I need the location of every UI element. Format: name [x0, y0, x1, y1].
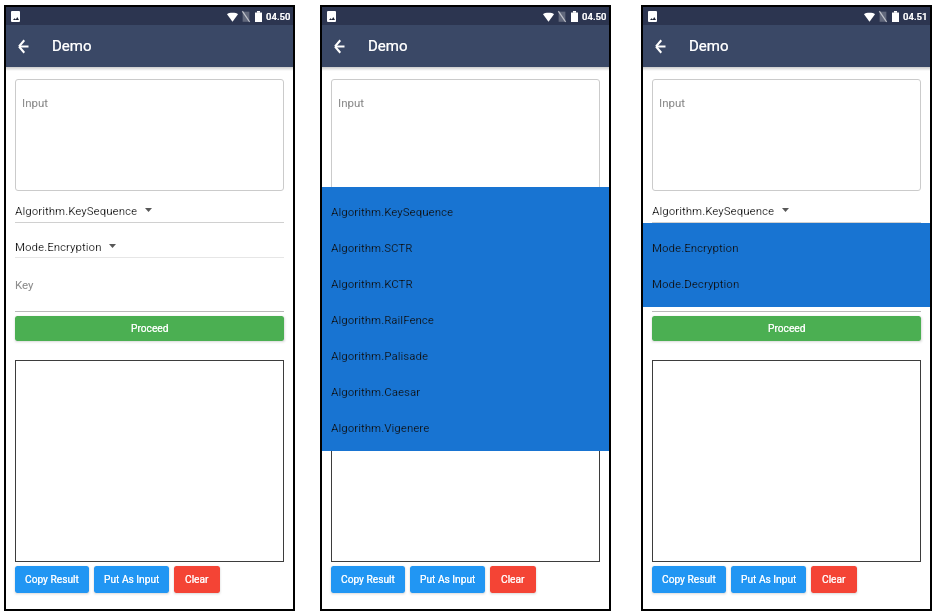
staticText: Mode.Decryption — [652, 277, 740, 290]
button[interactable]: Proceed — [15, 316, 284, 341]
button[interactable]: Copy Result — [15, 566, 89, 593]
staticText: 04.50 — [582, 11, 607, 22]
staticText: Copy Result — [25, 574, 79, 586]
button[interactable]: Algorithm.KeySequence — [652, 199, 937, 221]
staticText: Mode.Encryption — [652, 241, 739, 254]
button[interactable]: Back — [326, 33, 352, 59]
staticText: Proceed — [131, 323, 169, 335]
button[interactable]: Back — [10, 33, 36, 59]
button[interactable]: Clear — [490, 566, 536, 593]
staticText: Algorithm.RailFence — [331, 313, 434, 326]
button[interactable]: Algorithm.KeySequence — [15, 199, 302, 221]
staticText: Algorithm.KCTR — [331, 277, 413, 290]
staticText: Algorithm.KeySequence — [652, 204, 775, 217]
staticText: Key — [331, 278, 350, 291]
staticText: Key — [15, 278, 34, 291]
staticText: Clear — [822, 574, 846, 586]
staticText: Copy Result — [662, 574, 716, 586]
button[interactable]: Algorithm.KeySequence — [322, 193, 609, 229]
staticText: Algorithm.KeySequence — [331, 204, 454, 217]
staticText: Algorithm.SCTR — [331, 241, 413, 254]
staticText: 04.50 — [266, 11, 291, 22]
staticText: Clear — [185, 574, 209, 586]
staticText: Put As Input — [420, 574, 476, 586]
button[interactable]: Algorithm.SCTR — [322, 229, 609, 265]
button[interactable]: Proceed — [331, 316, 600, 341]
button[interactable]: Input — [331, 79, 600, 191]
button[interactable]: Algorithm.KCTR — [322, 265, 609, 301]
staticText: 04.51 — [903, 11, 928, 22]
button[interactable]: Algorithm.Caesar — [322, 373, 609, 409]
staticText: Algorithm.Palisade — [331, 349, 429, 362]
staticText: Proceed — [768, 323, 806, 335]
button[interactable]: Input — [15, 79, 284, 191]
button[interactable]: Mode.Decryption — [643, 265, 930, 301]
button[interactable]: Algorithm.Palisade — [322, 337, 609, 373]
button[interactable]: Proceed — [652, 316, 921, 341]
staticText: Algorithm.Caesar — [331, 385, 421, 398]
button[interactable]: Copy Result — [652, 566, 726, 593]
staticText: Demo — [52, 37, 92, 55]
staticText: Demo — [368, 37, 408, 55]
button[interactable]: Clear — [174, 566, 220, 593]
button[interactable]: Put As Input — [94, 566, 169, 593]
button[interactable]: Input — [652, 79, 921, 191]
button[interactable]: Mode.Encryption — [643, 229, 930, 265]
button[interactable]: Put As Input — [731, 566, 806, 593]
button[interactable]: Clear — [811, 566, 857, 593]
staticText: Algorithm.KeySequence — [331, 205, 454, 218]
button[interactable]: Put As Input — [410, 566, 485, 593]
button[interactable]: Back — [647, 33, 673, 59]
button[interactable]: Algorithm.Vigenere — [322, 409, 609, 445]
button[interactable]: Mode.Encryption — [15, 235, 302, 257]
staticText: Algorithm.KeySequence — [15, 204, 138, 217]
staticText: Copy Result — [341, 574, 395, 586]
staticText: Put As Input — [104, 574, 160, 586]
staticText: Put As Input — [741, 574, 797, 586]
staticText: Algorithm.Vigenere — [331, 421, 430, 434]
staticText: Input — [659, 96, 686, 109]
button[interactable]: Mode.Encryption — [331, 235, 618, 257]
button[interactable]: Algorithm.KeySequence — [331, 199, 618, 221]
button[interactable]: Algorithm.RailFence — [322, 301, 609, 337]
staticText: Demo — [689, 37, 729, 55]
button[interactable]: Copy Result — [331, 566, 405, 593]
staticText: Clear — [501, 574, 525, 586]
staticText: Input — [22, 96, 49, 109]
staticText: Input — [338, 96, 365, 109]
staticText: Mode.Encryption — [15, 240, 102, 253]
staticText: Mode.Encryption — [331, 240, 418, 253]
